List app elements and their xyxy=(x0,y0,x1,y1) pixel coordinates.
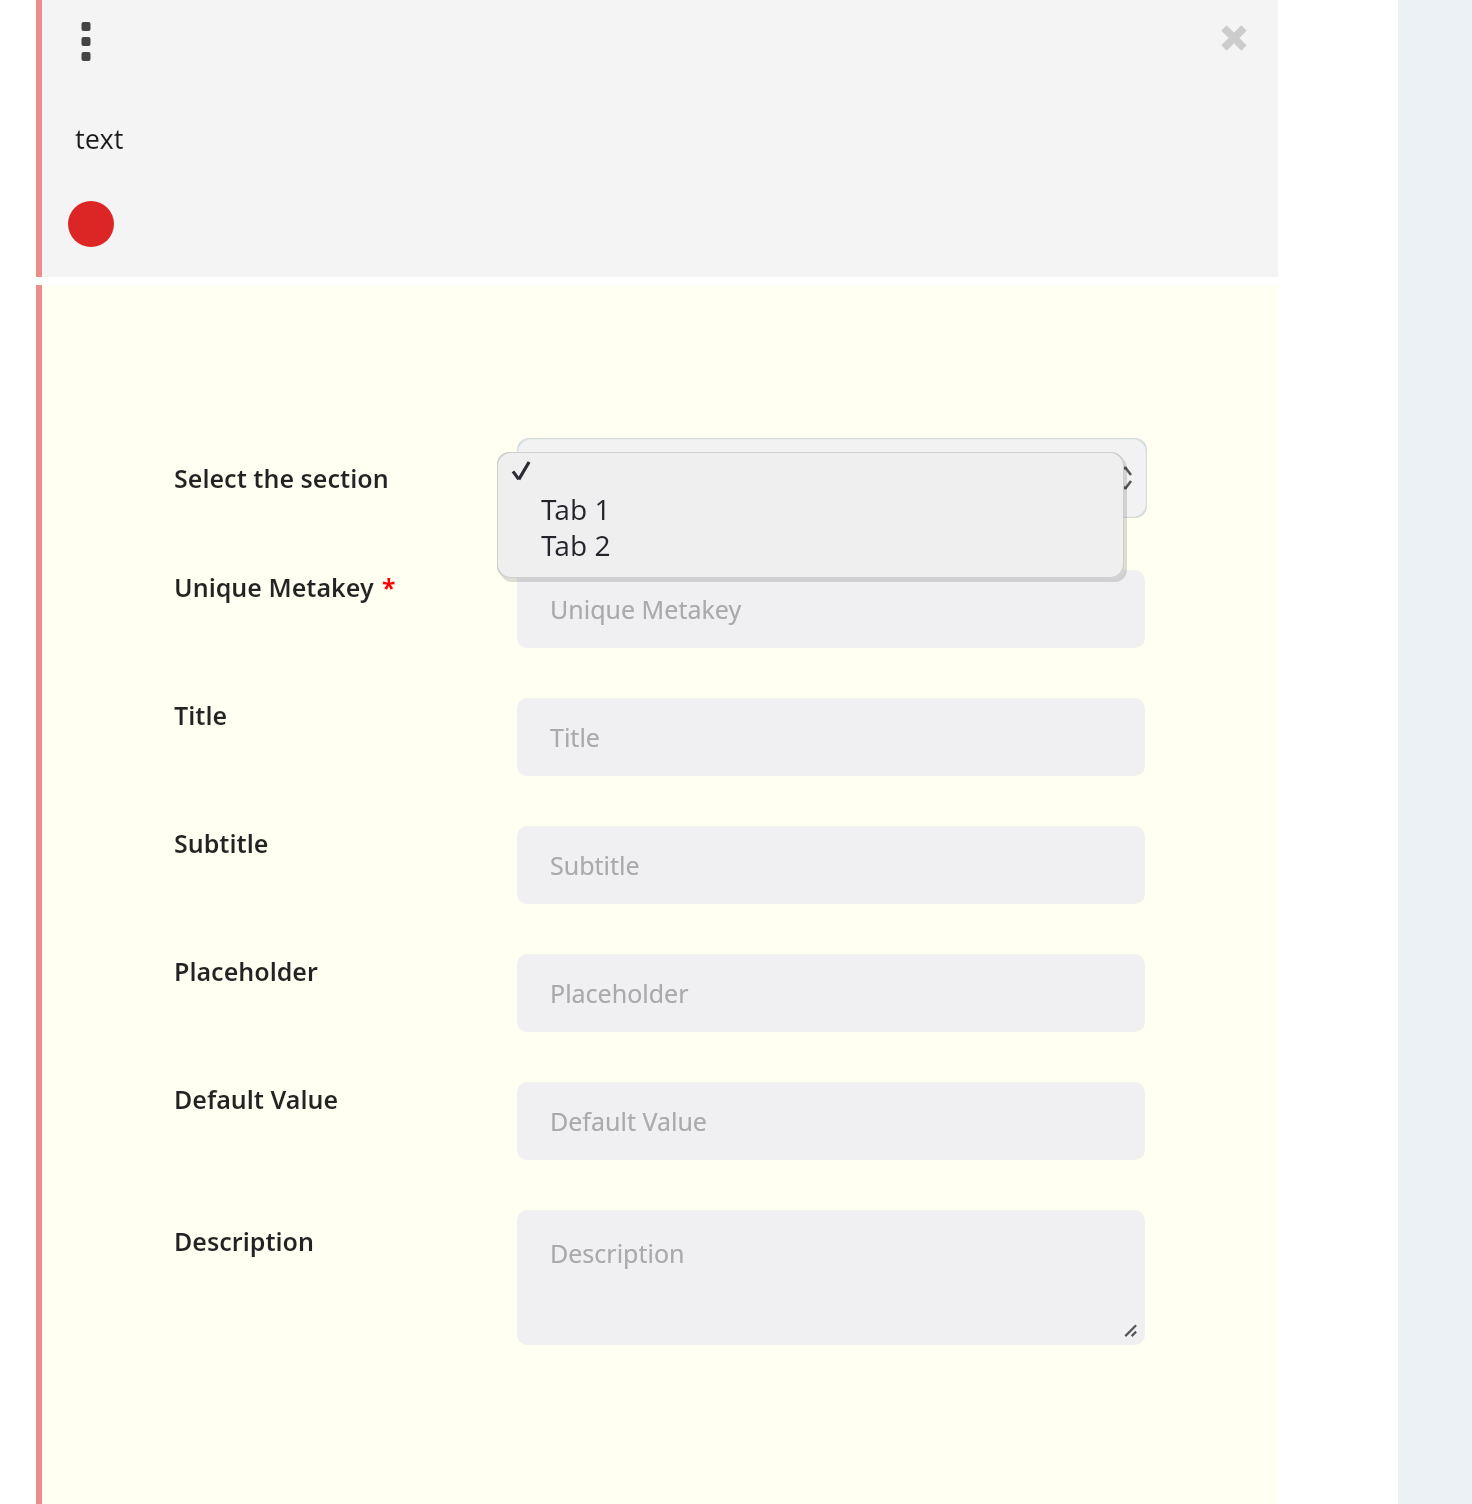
staticText: text xyxy=(75,120,124,157)
staticText: Description xyxy=(174,1224,314,1258)
staticText: Default Value xyxy=(174,1082,339,1116)
staticText: * xyxy=(382,570,396,604)
staticText: Placeholder xyxy=(174,954,318,988)
button[interactable]: Tab 2 xyxy=(497,526,1124,562)
staticText: Tab 1 xyxy=(541,490,611,526)
staticText: Tab 2 xyxy=(541,526,611,562)
button[interactable]: Default Value xyxy=(517,1082,1145,1160)
button[interactable]: Close xyxy=(1206,10,1262,66)
button[interactable]: Subtitle xyxy=(517,826,1145,904)
button[interactable]: Selected empty option xyxy=(497,452,1124,490)
button[interactable]: Tab 1 xyxy=(497,490,1124,526)
staticText: Title xyxy=(550,720,600,754)
staticText: Placeholder xyxy=(550,976,689,1010)
staticText: Unique Metakey xyxy=(174,570,374,604)
staticText: Title xyxy=(174,698,228,732)
staticText: Default Value xyxy=(550,1104,707,1138)
button[interactable]: Title xyxy=(517,698,1145,776)
button[interactable]: Placeholder xyxy=(517,954,1145,1032)
staticText: Select the section xyxy=(174,461,389,495)
button[interactable]: Status indicator xyxy=(67,200,115,248)
button[interactable]: Description xyxy=(517,1210,1145,1345)
staticText: Description xyxy=(550,1236,685,1270)
button[interactable]: More options xyxy=(62,18,110,66)
staticText: Unique Metakey xyxy=(550,592,742,626)
staticText: Subtitle xyxy=(550,848,640,882)
button[interactable]: Unique Metakey xyxy=(517,570,1145,648)
button[interactable] xyxy=(517,438,1147,518)
staticText: Subtitle xyxy=(174,826,269,860)
